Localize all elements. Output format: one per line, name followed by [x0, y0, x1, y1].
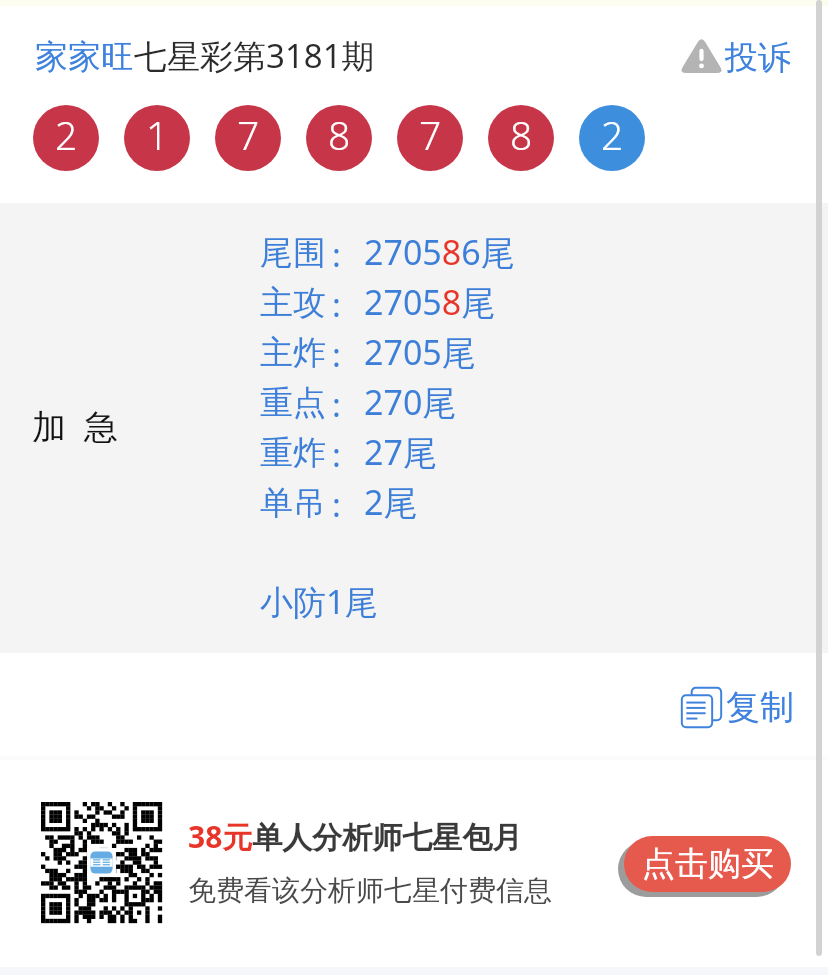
staticText: 尾围 [260, 232, 326, 274]
button[interactable]: 1 [124, 105, 190, 171]
staticText: 270586尾 [364, 229, 515, 275]
button[interactable]: 点击购买 [624, 836, 791, 892]
button[interactable]: 38元单人分析师七星包月 [0, 760, 828, 967]
button[interactable]: 2 [579, 105, 645, 171]
button[interactable]: 8 [306, 105, 372, 171]
staticText: 2尾 [364, 479, 418, 525]
button[interactable]: 7 [215, 105, 281, 171]
button[interactable]: 投诉 [678, 36, 795, 84]
staticText: : [332, 482, 341, 527]
button[interactable]: 8 [488, 105, 554, 171]
staticText: 主攻 [260, 282, 326, 324]
button[interactable]: 复制 [676, 681, 798, 731]
staticText: 7 [419, 108, 442, 161]
staticText: 重炸 [260, 432, 326, 474]
other: 投诉 [679, 36, 724, 73]
staticText: 38元单人分析师七星包月 [188, 816, 523, 857]
staticText: 加 急 [32, 403, 118, 449]
staticText: 单吊 [260, 482, 326, 524]
staticText: 点击购买 [642, 843, 774, 885]
staticText: : [332, 282, 341, 327]
staticText: 2705尾 [364, 329, 476, 375]
staticText: 8 [510, 108, 533, 161]
button[interactable]: 7 [397, 105, 463, 171]
button[interactable]: 加 急 [0, 203, 828, 653]
button[interactable]: 2 [33, 105, 99, 171]
staticText: : [332, 332, 341, 377]
staticText: 重点 [260, 382, 326, 424]
staticText: 小防1尾 [260, 579, 378, 624]
staticText: 主炸 [260, 332, 326, 374]
button[interactable]: 家家旺七星彩第3181期 [35, 33, 375, 78]
staticText: : [332, 232, 341, 277]
other: 复制 [681, 687, 722, 728]
staticText: 270尾 [364, 379, 457, 425]
staticText: 7 [237, 108, 260, 161]
staticText: 免费看该分析师七星付费信息 [188, 873, 552, 908]
staticText: 投诉 [725, 37, 791, 79]
staticText: 27尾 [364, 429, 437, 475]
staticText: 复制 [726, 686, 794, 729]
staticText: 2 [55, 108, 78, 161]
staticText: : [332, 432, 341, 477]
staticText: : [332, 382, 341, 427]
staticText: 8 [328, 108, 351, 161]
staticText: 27058尾 [364, 279, 496, 325]
staticText: 1 [146, 108, 169, 161]
staticText: 2 [601, 108, 624, 161]
